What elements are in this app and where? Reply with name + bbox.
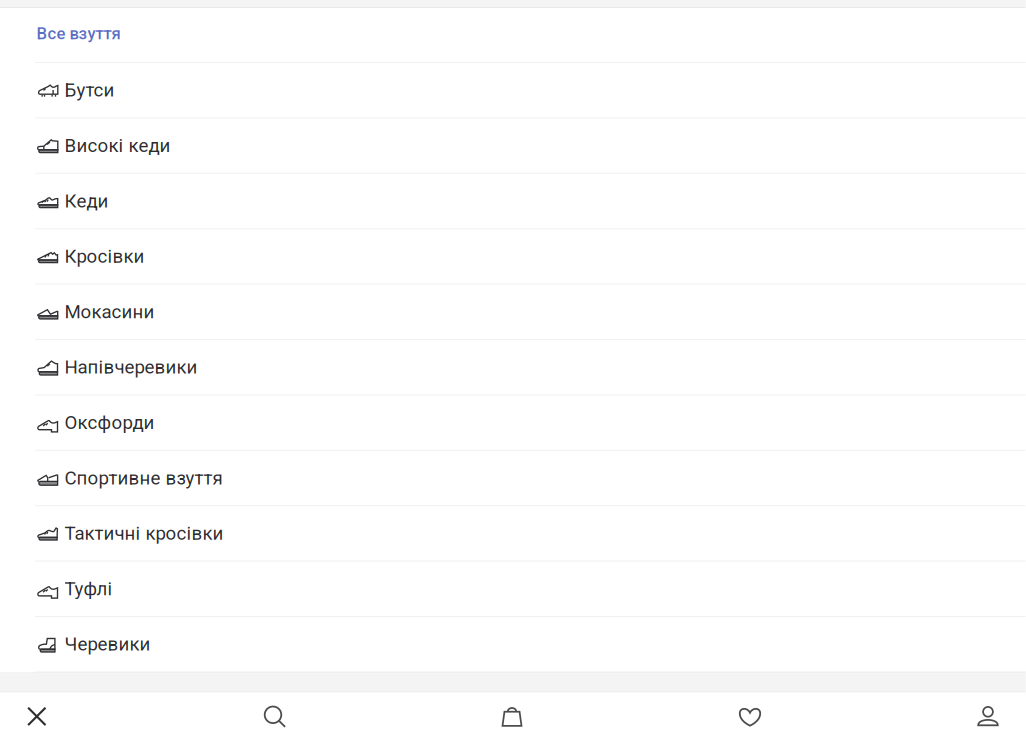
staticText: Оксфорди <box>64 412 154 434</box>
staticText: Тактичні кросівки <box>64 522 223 544</box>
staticText: Спортивне взуття <box>64 467 222 489</box>
staticText: Мокасини <box>64 301 154 323</box>
button[interactable]: Високі кеди <box>0 118 1026 174</box>
button[interactable]: Search <box>74 692 474 740</box>
button[interactable]: Cart <box>474 692 550 740</box>
staticText: Все взуття <box>37 24 121 43</box>
button[interactable]: Favourites <box>550 692 950 740</box>
staticText: Черевики <box>64 633 150 655</box>
button[interactable]: Спортивне взуття <box>0 451 1026 506</box>
button[interactable]: Туфлі <box>0 562 1026 617</box>
button[interactable]: Черевики <box>0 617 1026 672</box>
staticText: Кросівки <box>64 245 144 267</box>
button[interactable]: Оксфорди <box>0 395 1026 451</box>
button[interactable]: Напівчеревики <box>0 340 1026 395</box>
staticText: Туфлі <box>64 578 112 600</box>
button[interactable]: Кросівки <box>0 229 1026 285</box>
button[interactable]: Close <box>0 692 74 740</box>
staticText: Напівчеревики <box>64 356 197 378</box>
button[interactable]: Тактичні кросівки <box>0 506 1026 562</box>
button[interactable]: Кеди <box>0 174 1026 229</box>
button[interactable]: Бутси <box>0 63 1026 118</box>
staticText: Бутси <box>64 79 114 101</box>
staticText: Кеди <box>64 190 108 212</box>
button[interactable]: Мокасини <box>0 285 1026 340</box>
button[interactable]: Profile <box>950 692 1026 740</box>
staticText: Високі кеди <box>64 135 170 157</box>
